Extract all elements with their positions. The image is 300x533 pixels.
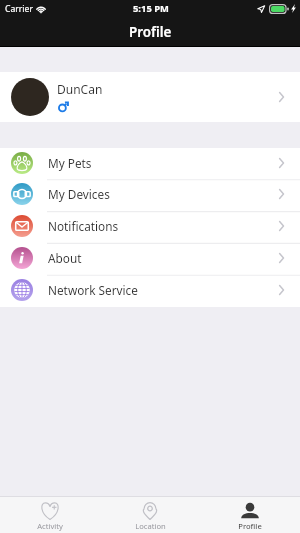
staticText: Profile: [238, 521, 262, 531]
staticText: DunCan: [57, 81, 103, 97]
button[interactable]: DunCan: [0, 72, 300, 122]
staticText: Notifications: [48, 218, 119, 234]
button[interactable]: My Devices: [0, 179, 300, 211]
button[interactable]: Profile: [200, 497, 300, 533]
staticText: My Pets: [48, 155, 92, 171]
button[interactable]: My Pets: [0, 148, 300, 179]
staticText: Location: [135, 521, 166, 531]
button[interactable]: Activity: [0, 497, 100, 533]
button[interactable]: Network Service: [0, 275, 300, 307]
staticText: 5:15 PM: [133, 2, 169, 15]
staticText: Carrier: [5, 3, 33, 15]
staticText: My Devices: [48, 186, 110, 202]
button[interactable]: About: [0, 243, 300, 275]
staticText: Activity: [37, 521, 63, 531]
staticText: About: [48, 250, 82, 266]
staticText: Profile: [129, 23, 172, 41]
button[interactable]: Location: [100, 497, 200, 533]
staticText: Network Service: [48, 282, 138, 298]
button[interactable]: Notifications: [0, 211, 300, 243]
